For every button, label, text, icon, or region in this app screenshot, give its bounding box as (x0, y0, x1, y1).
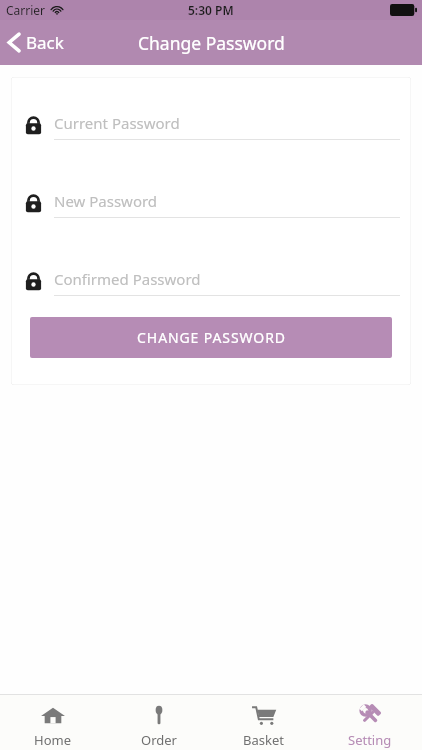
staticText: Confirmed Password (54, 269, 201, 289)
button[interactable]: New Password (11, 188, 411, 218)
staticText: Current Password (54, 113, 180, 133)
button[interactable]: Order (106, 695, 211, 750)
staticText: Back (26, 31, 64, 54)
button[interactable]: CHANGE PASSWORD (30, 317, 392, 358)
staticText: CHANGE PASSWORD (137, 328, 286, 347)
button[interactable]: Home (0, 695, 105, 750)
button[interactable]: Confirmed Password (11, 266, 411, 296)
staticText: Setting (348, 731, 392, 749)
button[interactable]: Back (0, 27, 74, 58)
staticText: Home (34, 731, 71, 749)
staticText: Order (141, 731, 177, 749)
staticText: Carrier (6, 2, 46, 18)
staticText: Change Password (138, 31, 285, 55)
staticText: Basket (243, 731, 284, 749)
staticText: 5:30 PM (188, 2, 234, 18)
staticText: New Password (54, 191, 158, 211)
button[interactable]: Basket (211, 695, 316, 750)
button[interactable]: Current Password (11, 110, 411, 140)
button[interactable]: Setting (317, 695, 422, 750)
